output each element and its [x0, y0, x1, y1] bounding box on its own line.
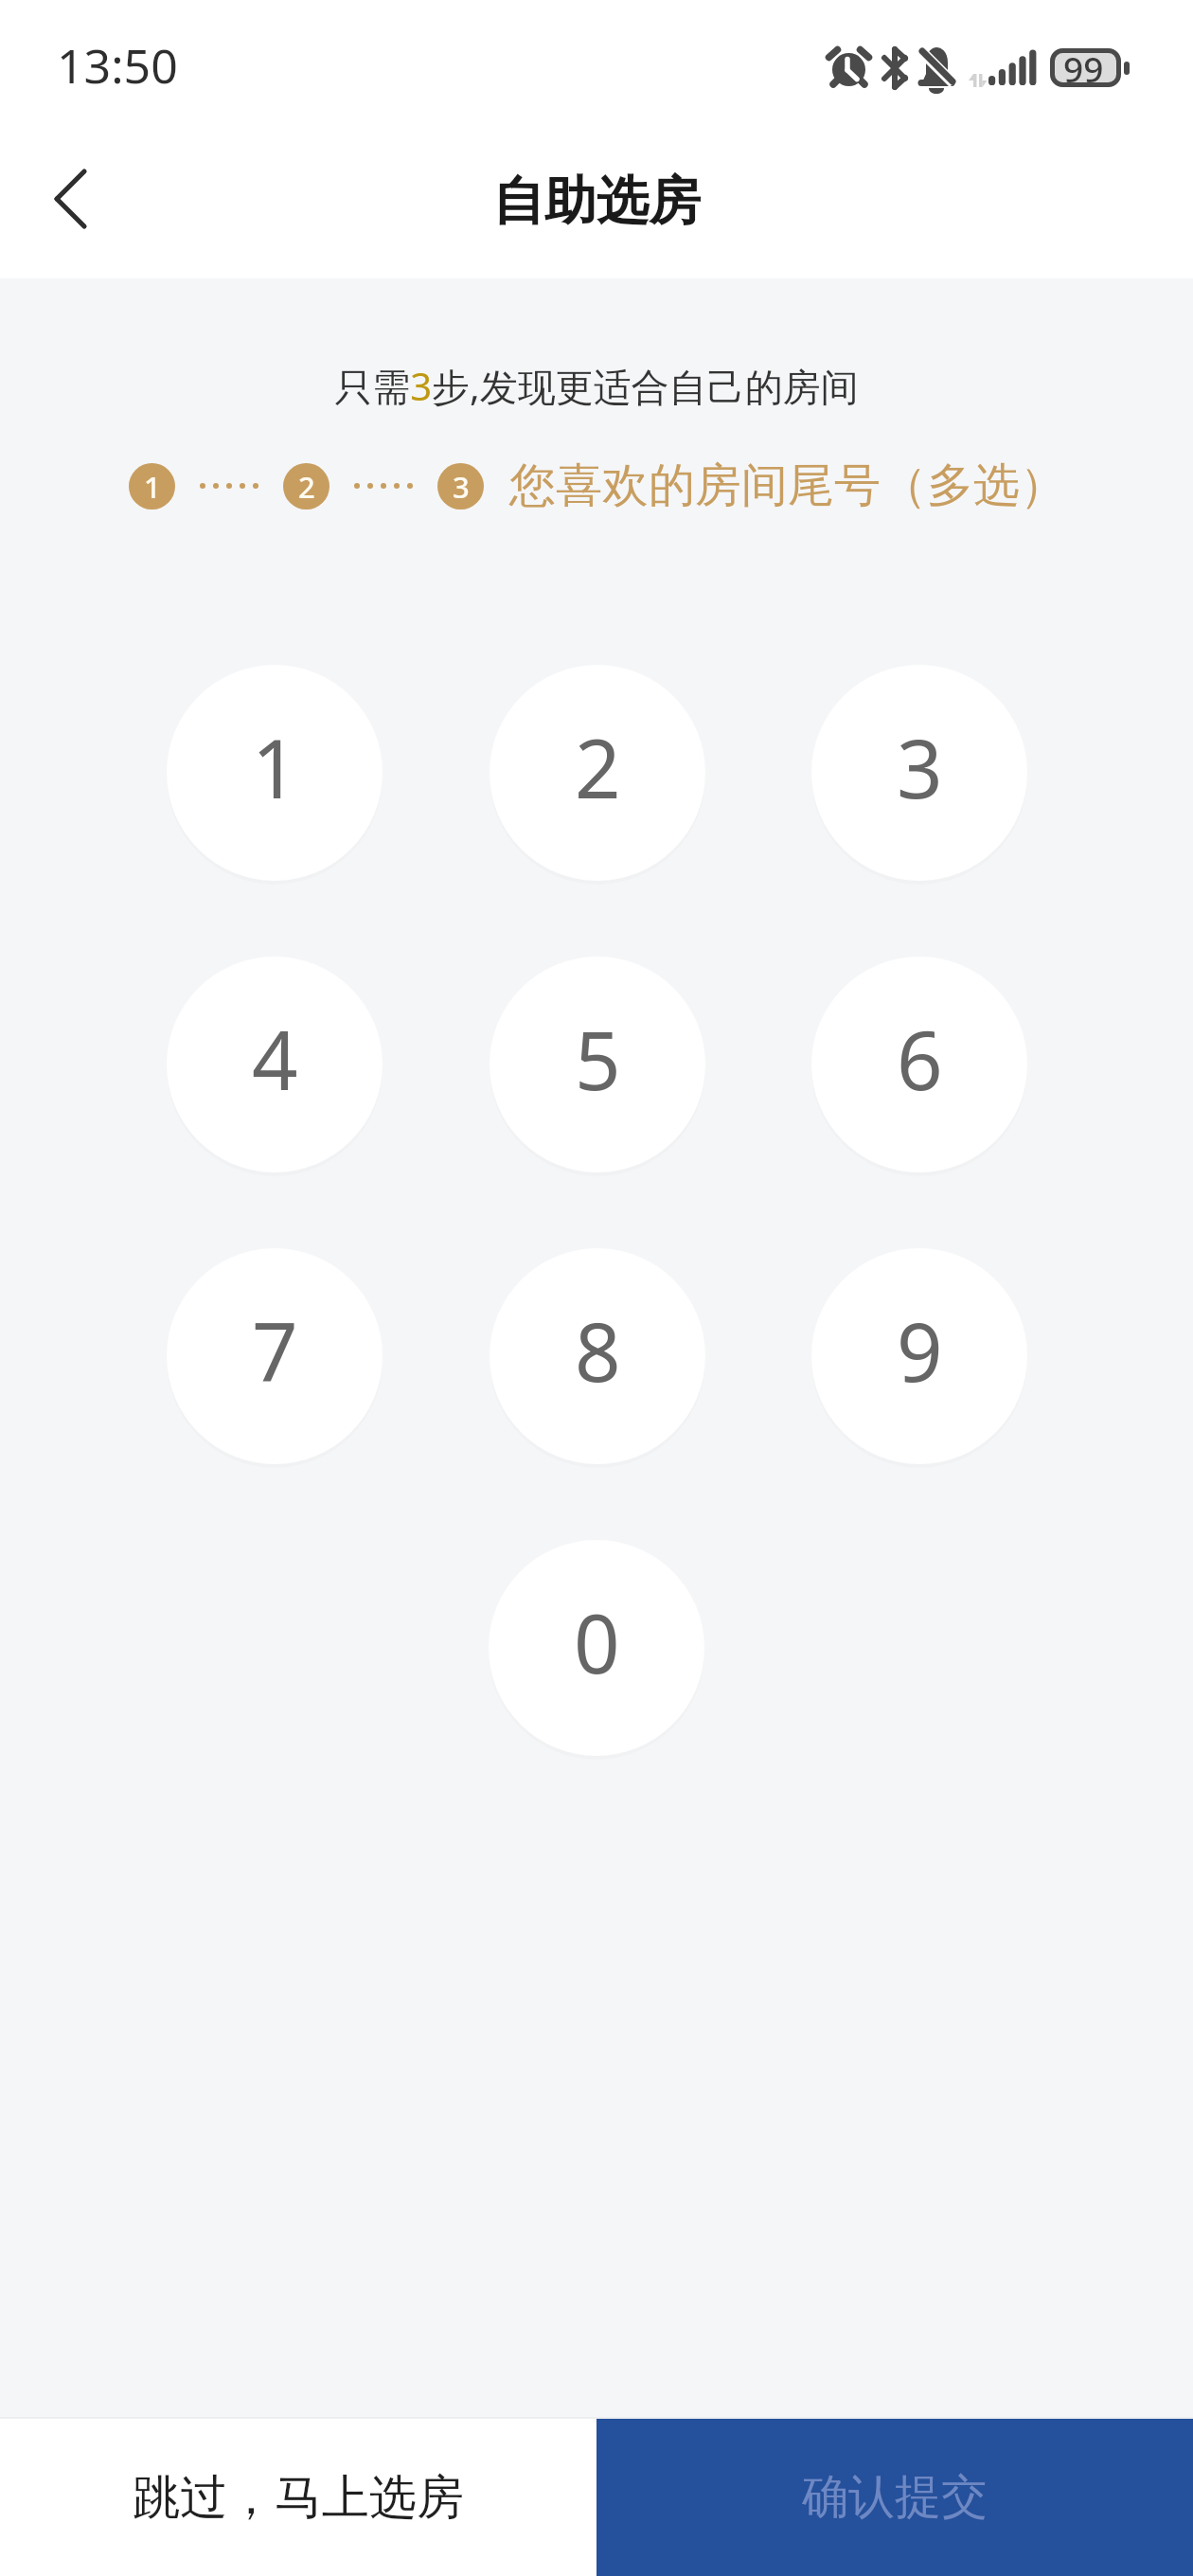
- staticText: 9: [897, 1296, 943, 1405]
- staticText: 8: [575, 1296, 621, 1405]
- button[interactable]: 6: [811, 957, 1027, 1172]
- button[interactable]: 确认提交: [596, 2419, 1193, 2576]
- button[interactable]: 2: [490, 665, 705, 881]
- button[interactable]: 1: [167, 665, 383, 881]
- staticText: 13:50: [57, 33, 178, 98]
- staticText: 0: [574, 1587, 620, 1697]
- button[interactable]: 0: [489, 1540, 704, 1756]
- button[interactable]: 跳过，马上选房: [0, 2419, 596, 2576]
- button[interactable]: 9: [811, 1248, 1027, 1464]
- button[interactable]: 5: [490, 957, 705, 1172]
- button[interactable]: 7: [167, 1248, 383, 1464]
- staticText: 只需3步,发现更适合自己的房间: [0, 360, 1193, 412]
- button[interactable]: 8: [490, 1248, 705, 1464]
- staticText: 自助选房: [492, 169, 701, 234]
- staticText: 3: [453, 467, 470, 507]
- staticText: 2: [575, 712, 621, 822]
- staticText: 7: [252, 1296, 298, 1405]
- staticText: 跳过，马上选房: [133, 2468, 464, 2528]
- staticText: 5: [575, 1004, 621, 1114]
- staticText: 4: [252, 1004, 298, 1114]
- staticText: 99: [1063, 45, 1104, 92]
- button[interactable]: 4: [167, 957, 383, 1172]
- staticText: 6: [897, 1004, 943, 1114]
- staticText: 确认提交: [802, 2468, 988, 2527]
- button[interactable]: Back: [14, 142, 128, 256]
- staticText: 3: [897, 712, 943, 822]
- staticText: 2: [298, 467, 315, 507]
- staticText: 1: [252, 712, 298, 822]
- staticText: 1: [144, 467, 161, 507]
- button[interactable]: 3: [811, 665, 1027, 881]
- staticText: 您喜欢的房间尾号（多选）: [509, 456, 1066, 515]
